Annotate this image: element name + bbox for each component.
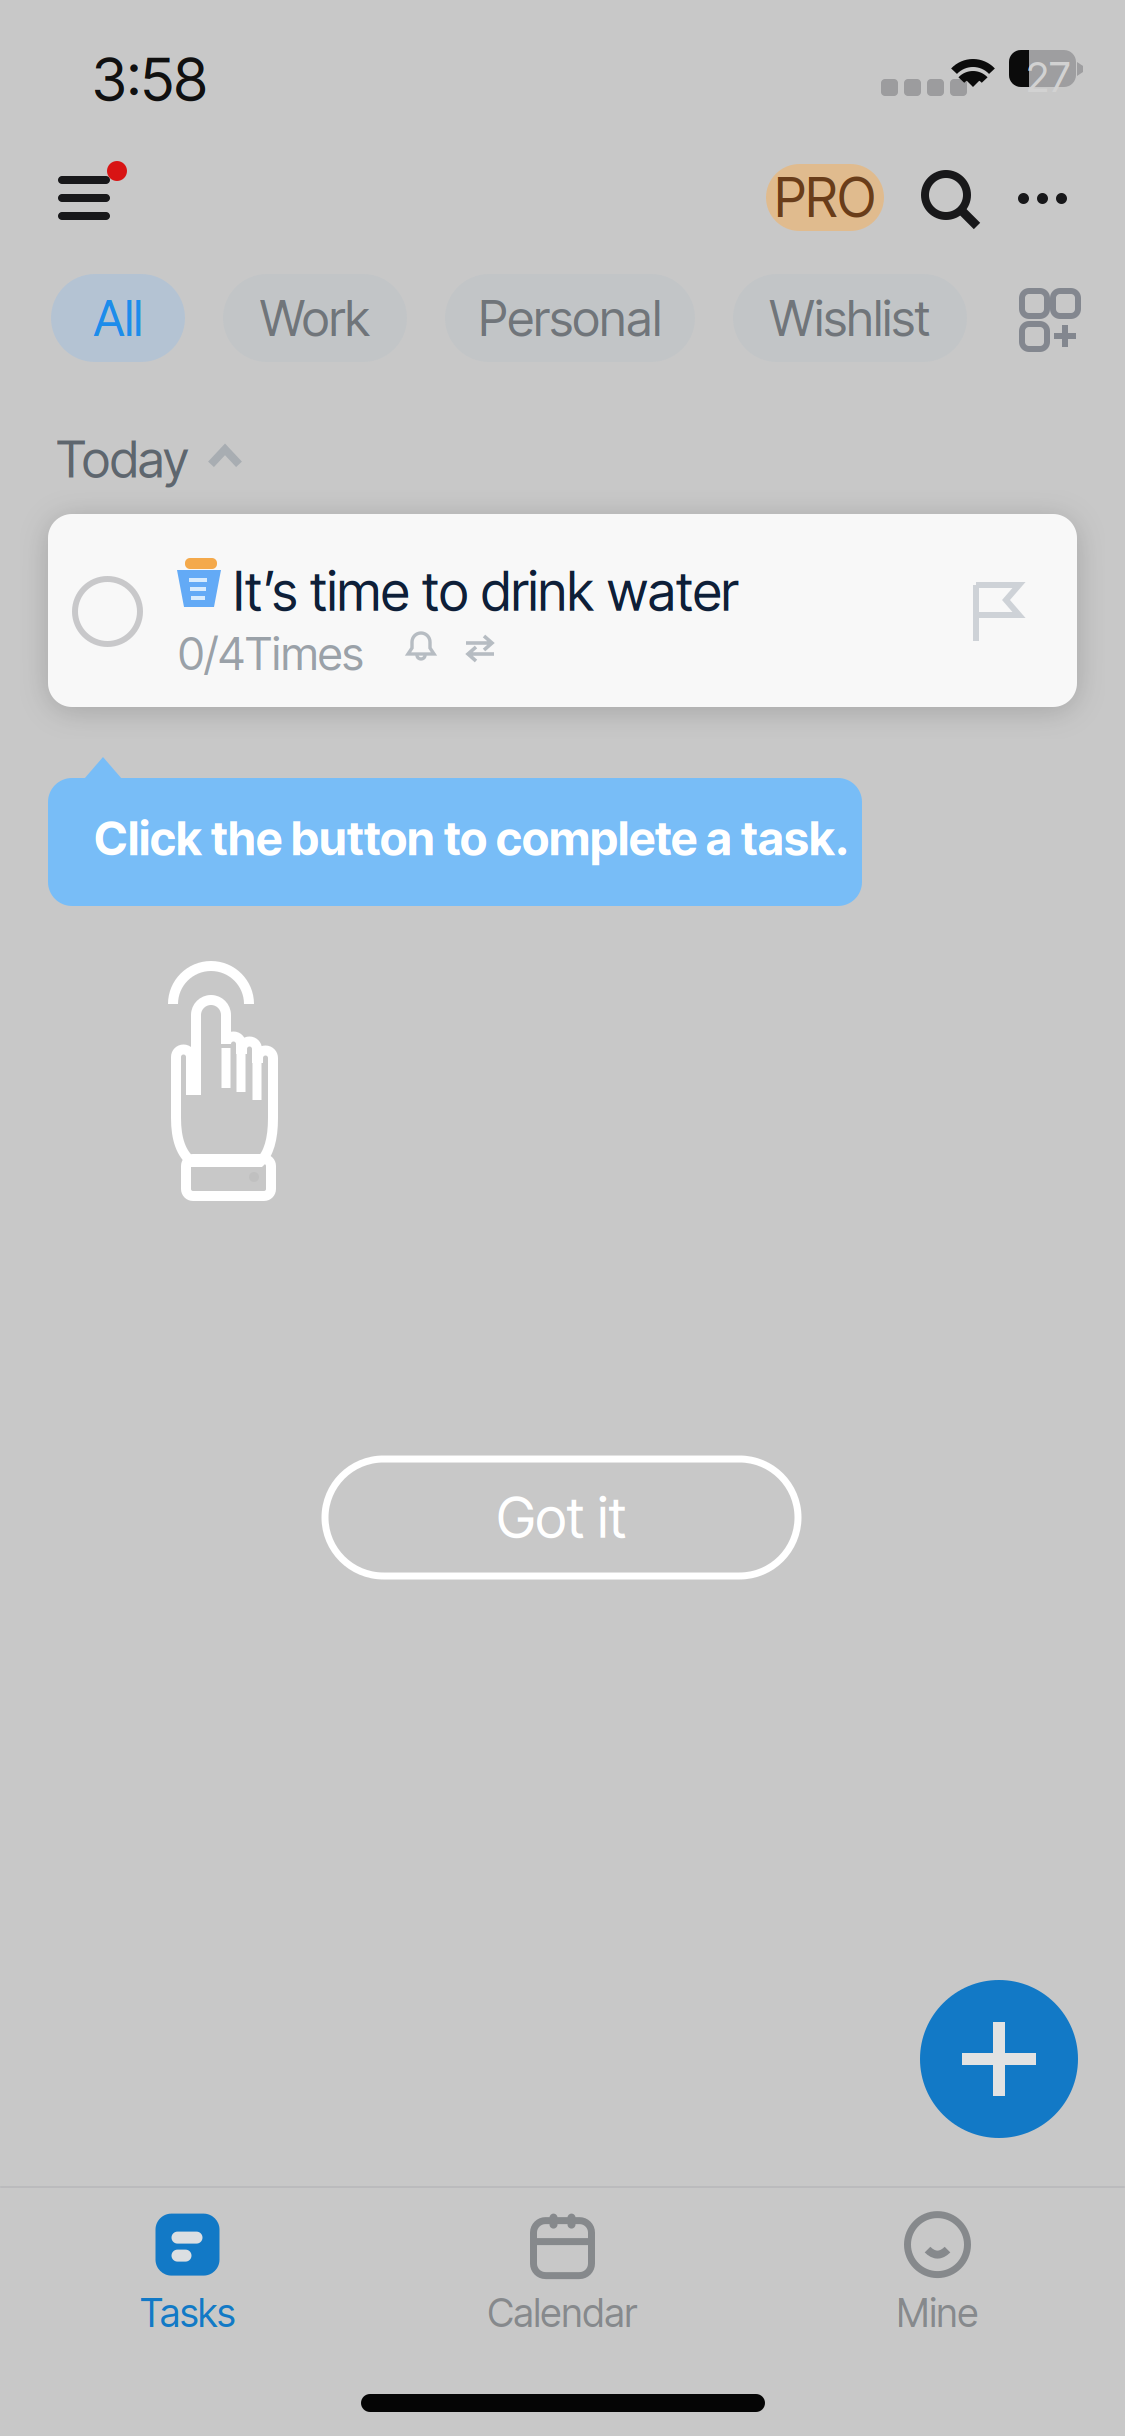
staticText: All <box>93 288 142 348</box>
button[interactable]: Menu <box>58 155 130 227</box>
staticText: Mine <box>896 2290 978 2336</box>
staticText: Work <box>260 288 370 348</box>
button[interactable]: Mine <box>750 2200 1125 2350</box>
button[interactable]: All <box>51 274 185 362</box>
staticText: 3:58 <box>92 44 207 115</box>
staticText: PRO <box>774 165 875 230</box>
staticText: 0/4Times <box>178 626 364 681</box>
button[interactable]: More options <box>1018 174 1067 223</box>
button[interactable]: PRO <box>766 164 884 231</box>
button[interactable]: Today <box>56 429 256 489</box>
staticText: Tasks <box>140 2290 235 2336</box>
button[interactable]: Search <box>925 174 979 228</box>
button[interactable]: Add task <box>920 1980 1078 2138</box>
button[interactable]: It’s time to drink water <box>48 514 1077 707</box>
button[interactable]: Manage lists <box>1022 291 1078 349</box>
button[interactable]: Tasks <box>0 2200 375 2350</box>
button[interactable]: Got it <box>325 1459 798 1576</box>
staticText: 27 <box>1026 52 1070 102</box>
staticText: Today <box>56 428 189 490</box>
staticText: It’s time to drink water <box>233 559 738 623</box>
staticText: Calendar <box>487 2290 637 2336</box>
button[interactable]: Personal <box>445 274 695 362</box>
button[interactable]: Wishlist <box>733 274 967 362</box>
staticText: Wishlist <box>769 288 930 348</box>
button[interactable]: Work <box>223 274 407 362</box>
staticText: Got it <box>496 1484 626 1551</box>
button[interactable]: Calendar <box>375 2200 750 2350</box>
staticText: Click the button to complete a task. <box>94 810 849 866</box>
staticText: Personal <box>478 288 661 348</box>
